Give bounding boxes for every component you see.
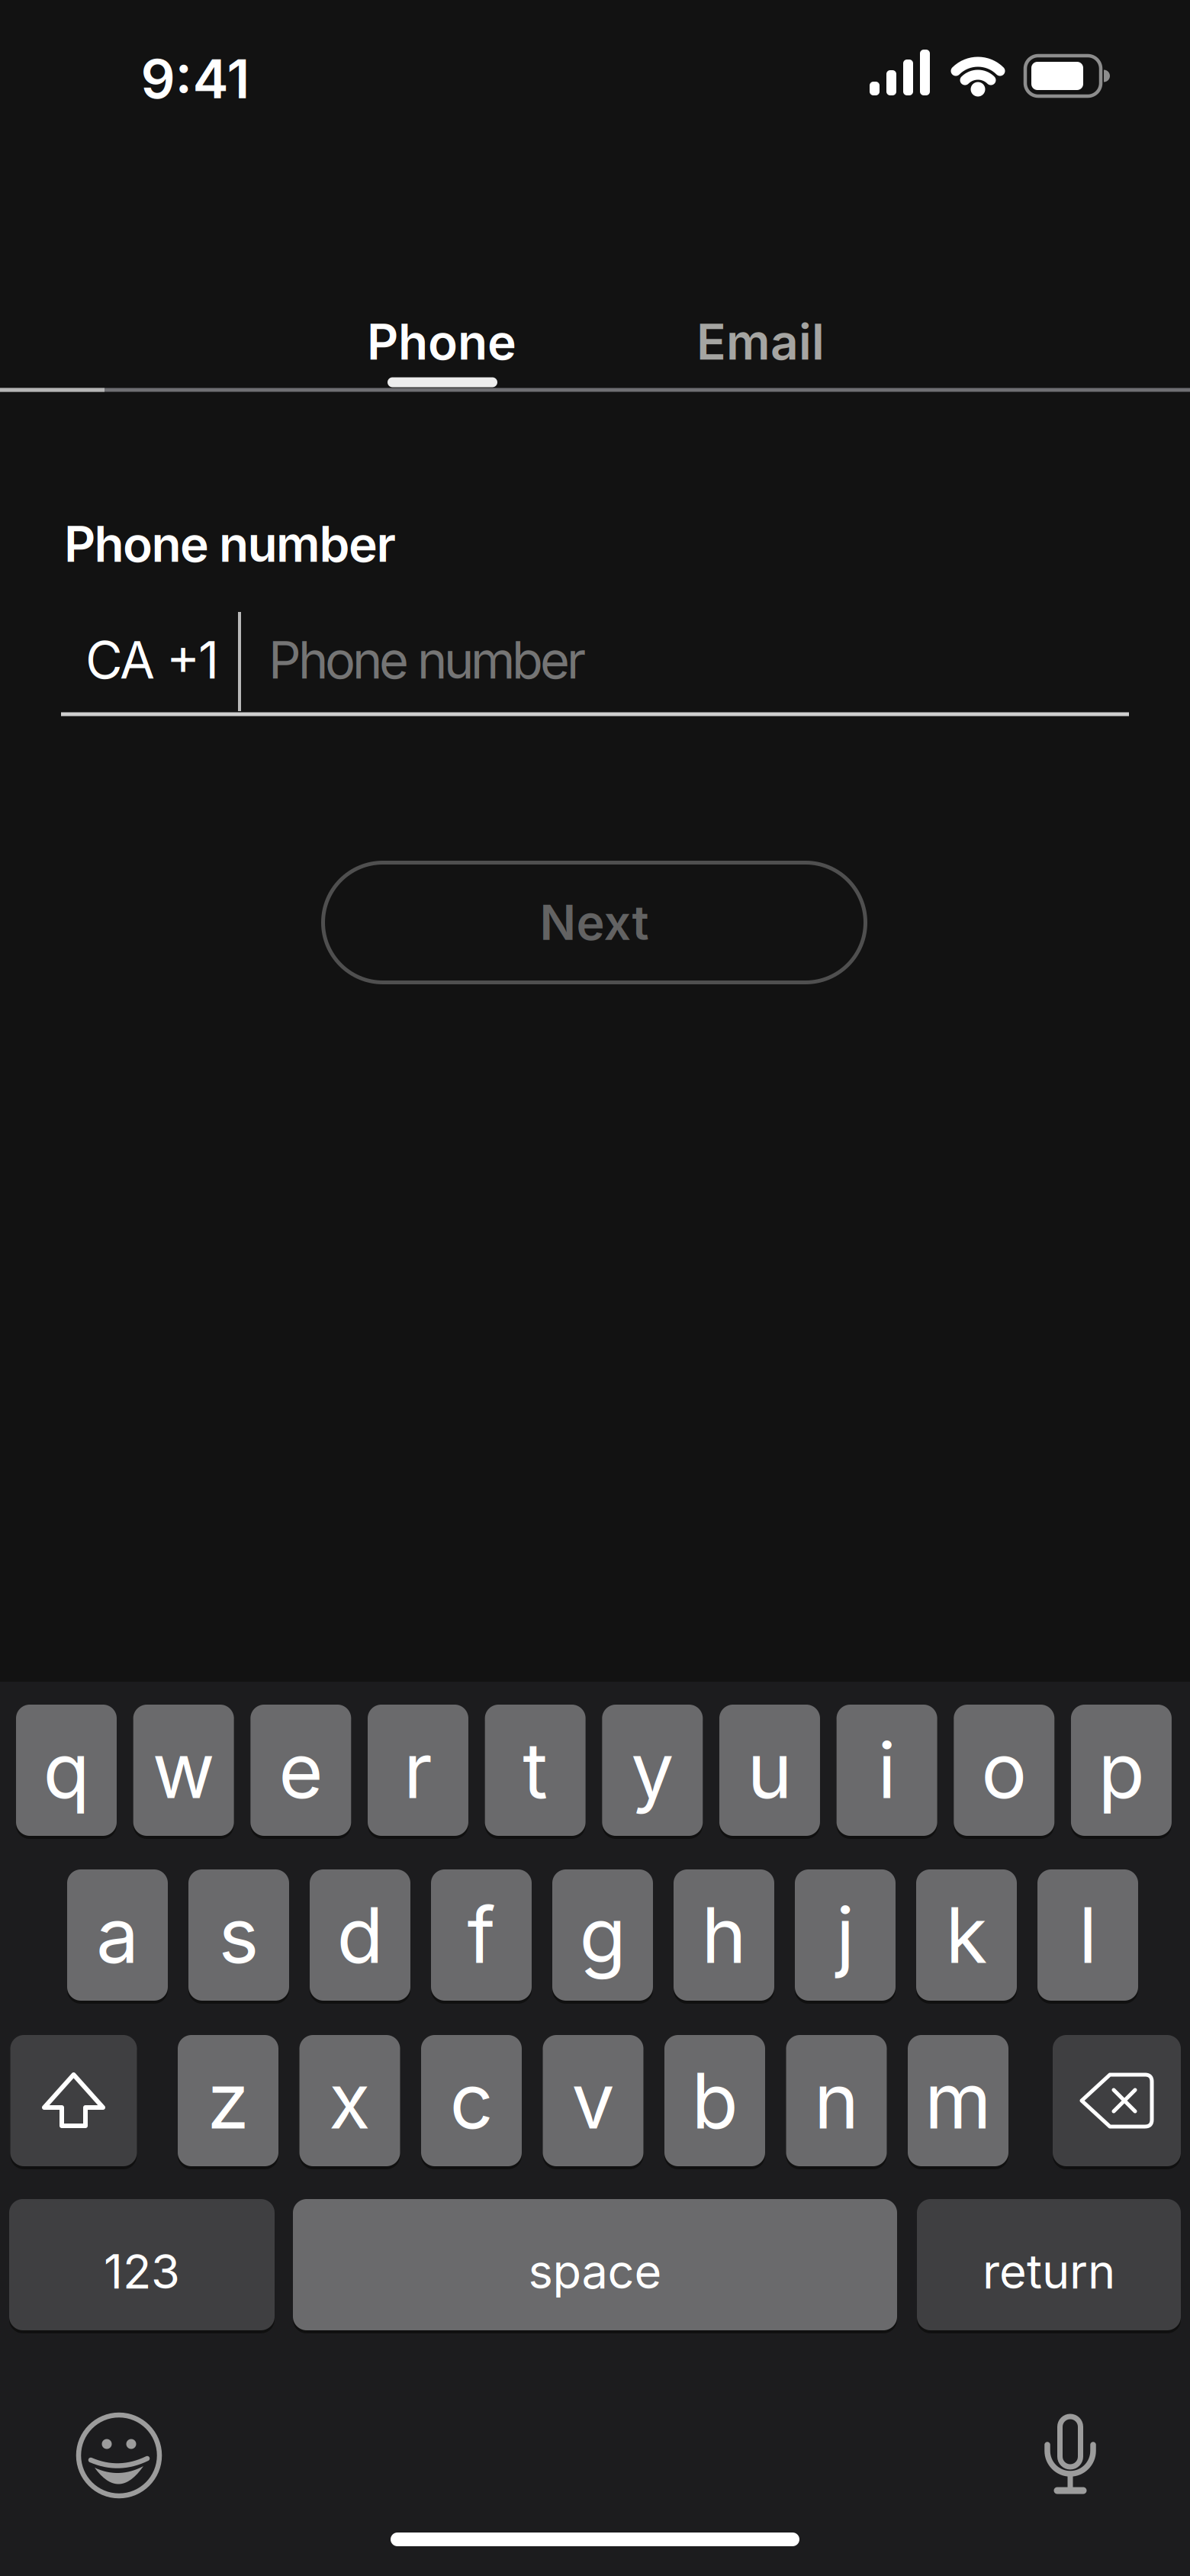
staticText: r: [404, 1724, 433, 1816]
button[interactable]: return: [917, 2198, 1181, 2332]
staticText: m: [925, 2054, 992, 2147]
staticText: c: [450, 2054, 493, 2147]
button[interactable]: j: [795, 1868, 896, 2002]
staticText: Next: [540, 894, 649, 951]
button[interactable]: e: [250, 1703, 351, 1837]
button[interactable]: m: [908, 2033, 1008, 2168]
staticText: i: [878, 1724, 896, 1816]
button[interactable]: z: [178, 2033, 278, 2168]
button[interactable]: u: [719, 1703, 820, 1837]
button[interactable]: c: [421, 2033, 522, 2168]
button[interactable]: v: [543, 2033, 643, 2168]
button[interactable]: n: [786, 2033, 887, 2168]
staticText: b: [691, 2054, 738, 2147]
staticText: a: [96, 1889, 139, 1981]
button[interactable]: Dictation: [1016, 2400, 1123, 2507]
button[interactable]: Email: [601, 288, 920, 395]
button[interactable]: i: [837, 1703, 937, 1837]
button[interactable]: l: [1037, 1868, 1138, 2002]
button[interactable]: t: [485, 1703, 586, 1837]
staticText: 9:41: [141, 46, 250, 111]
staticText: Phone: [367, 312, 516, 371]
staticText: q: [43, 1724, 90, 1816]
button[interactable]: r: [368, 1703, 468, 1837]
staticText: 123: [104, 2243, 180, 2300]
button[interactable]: Shift: [10, 2033, 137, 2168]
button[interactable]: Next: [323, 863, 865, 982]
staticText: h: [701, 1889, 746, 1981]
staticText: p: [1098, 1724, 1145, 1816]
staticText: y: [631, 1724, 674, 1816]
staticText: o: [981, 1724, 1027, 1816]
staticText: k: [946, 1889, 987, 1981]
staticText: s: [219, 1889, 259, 1981]
button[interactable]: space: [293, 2198, 897, 2332]
staticText: u: [747, 1724, 792, 1816]
button[interactable]: CA +1: [85, 607, 299, 713]
staticText: CA +1: [85, 629, 219, 691]
staticText: Phone number: [269, 629, 586, 691]
staticText: g: [579, 1889, 626, 1981]
button[interactable]: d: [310, 1868, 410, 2002]
button[interactable]: x: [299, 2033, 400, 2168]
button[interactable]: s: [188, 1868, 289, 2002]
button[interactable]: b: [664, 2033, 765, 2168]
button[interactable]: 123: [9, 2198, 275, 2332]
staticText: t: [523, 1724, 548, 1816]
button[interactable]: f: [431, 1868, 532, 2002]
staticText: e: [279, 1724, 323, 1816]
staticText: l: [1079, 1889, 1097, 1981]
staticText: w: [152, 1724, 215, 1816]
button[interactable]: p: [1071, 1703, 1172, 1837]
button[interactable]: w: [133, 1703, 234, 1837]
button[interactable]: o: [954, 1703, 1054, 1837]
button[interactable]: Delete: [1053, 2033, 1181, 2168]
staticText: d: [337, 1889, 383, 1981]
button[interactable]: Phone number: [269, 607, 1129, 713]
button[interactable]: g: [552, 1868, 653, 2002]
button[interactable]: y: [602, 1703, 703, 1837]
button[interactable]: Phone: [283, 288, 601, 395]
staticText: space: [528, 2243, 662, 2300]
staticText: n: [814, 2054, 859, 2147]
staticText: Phone number: [64, 515, 396, 574]
staticText: j: [836, 1889, 854, 1981]
staticText: x: [329, 2054, 371, 2147]
button[interactable]: h: [674, 1868, 774, 2002]
staticText: return: [983, 2243, 1115, 2300]
button[interactable]: q: [16, 1703, 117, 1837]
staticText: Email: [696, 312, 825, 371]
button[interactable]: k: [916, 1868, 1017, 2002]
button[interactable]: Emoji: [66, 2402, 172, 2509]
staticText: z: [207, 2054, 249, 2147]
button[interactable]: a: [67, 1868, 168, 2002]
staticText: f: [467, 1889, 495, 1981]
staticText: v: [572, 2054, 614, 2147]
